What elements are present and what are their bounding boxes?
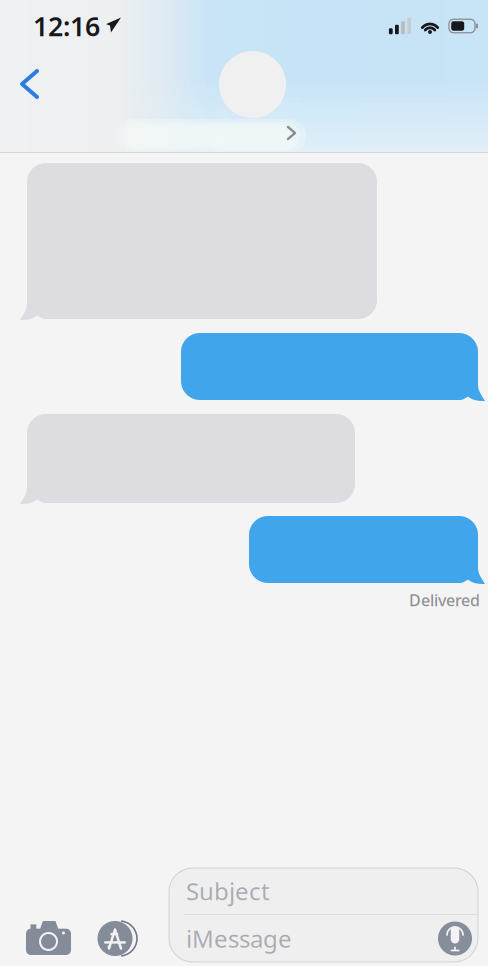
- staticText: Delivered: [409, 589, 480, 611]
- staticText: iMessage: [186, 923, 292, 954]
- button[interactable]: Back: [6, 58, 53, 110]
- button[interactable]: Record audio: [438, 921, 472, 955]
- button[interactable]: Take photo: [18, 911, 79, 965]
- staticText: 12:16: [33, 8, 100, 44]
- button[interactable]: Apps: [89, 911, 141, 966]
- staticText: Subject: [186, 875, 270, 907]
